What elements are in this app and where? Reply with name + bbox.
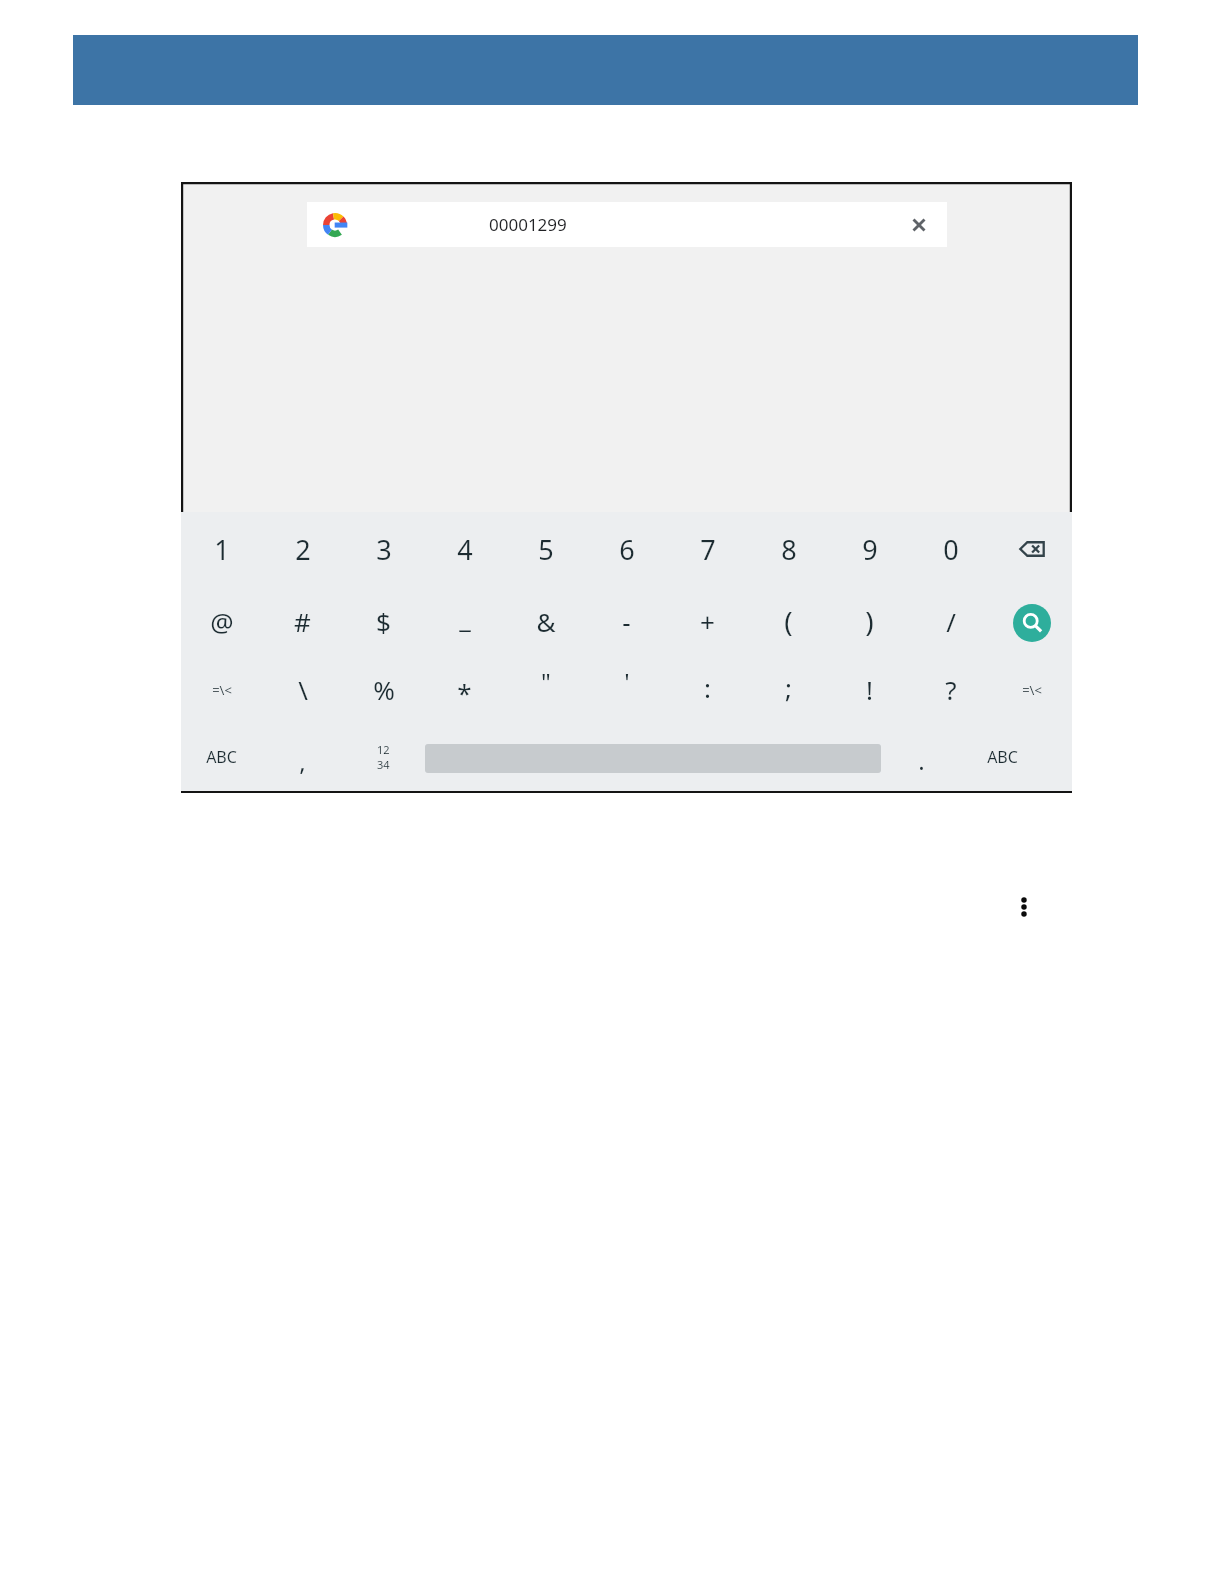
staticText: 7 [700,531,716,568]
button[interactable]: =\< [181,656,262,723]
staticText: & [536,604,556,639]
button[interactable]: ; [748,656,829,723]
button[interactable]: $ [343,586,424,656]
staticText: % [373,672,395,707]
staticText: ; [785,670,792,705]
staticText: @ [210,604,234,639]
staticText: 00001299 [489,213,567,236]
staticText: ABC [206,746,237,768]
staticText: - [622,604,631,639]
staticText: 2 [295,531,311,568]
staticText: ABC [987,746,1018,768]
staticText: 5 [538,531,554,568]
staticText: " [541,665,551,698]
staticText: 3 [376,531,392,568]
staticText: =\< [212,681,232,699]
button[interactable]: ' [586,656,667,723]
button[interactable]: 2 [262,512,343,586]
staticText: 6 [619,531,635,568]
button[interactable]: & [505,586,586,656]
button[interactable]: _ [424,586,505,656]
staticText: \ [298,672,308,707]
button[interactable]: 00001299 [307,202,947,247]
button[interactable]: 7 [667,512,748,586]
staticText: 8 [781,531,797,568]
button[interactable]: ABC [962,723,1043,791]
button[interactable]: 9 [829,512,910,586]
button[interactable]: 1 [181,512,262,586]
button[interactable]: ( [748,586,829,656]
button[interactable]: . [881,723,962,791]
button[interactable]: 5 [505,512,586,586]
staticText: ' [624,665,630,698]
button[interactable]: # [262,586,343,656]
staticText: / [946,604,956,639]
button[interactable]: , [262,723,343,791]
button[interactable]: " [505,656,586,723]
staticText: ( [784,602,793,640]
button[interactable]: % [343,656,424,723]
button[interactable]: ABC [181,723,262,791]
button[interactable]: ? [910,656,991,723]
button[interactable]: Backspace [991,512,1072,586]
staticText: : [704,670,711,705]
staticText: _ [459,600,471,635]
button[interactable]: Clear search [896,202,941,247]
button[interactable]: =\< [991,656,1072,723]
button[interactable]: Space [424,723,881,791]
button[interactable]: * [424,656,505,723]
staticText: # [294,604,311,639]
button[interactable]: 0 [910,512,991,586]
button[interactable]: More options [1004,887,1044,927]
button[interactable]: / [910,586,991,656]
button[interactable]: 3 [343,512,424,586]
staticText: . [918,744,925,777]
staticText: * [457,675,472,710]
button[interactable]: 8 [748,512,829,586]
staticText: 4 [457,531,473,568]
staticText: ! [866,672,873,707]
button[interactable]: Search [991,586,1072,656]
staticText: $ [376,604,391,639]
button[interactable]: 4 [424,512,505,586]
button[interactable]: ) [829,586,910,656]
staticText: + [700,604,715,639]
button[interactable]: : [667,656,748,723]
staticText: 1 [214,531,230,568]
button[interactable]: 6 [586,512,667,586]
button[interactable]: \ [262,656,343,723]
staticText: 34 [377,757,390,772]
staticText: ) [865,602,874,640]
button[interactable]: Number keyboard [343,723,424,791]
staticText: 0 [943,531,959,568]
staticText: =\< [1022,681,1042,699]
staticText: , [299,745,306,778]
button[interactable]: - [586,586,667,656]
button[interactable]: @ [181,586,262,656]
staticText: 9 [862,531,878,568]
staticText: 12 [377,742,390,757]
staticText: ? [945,672,957,707]
button[interactable]: + [667,586,748,656]
button[interactable]: ! [829,656,910,723]
